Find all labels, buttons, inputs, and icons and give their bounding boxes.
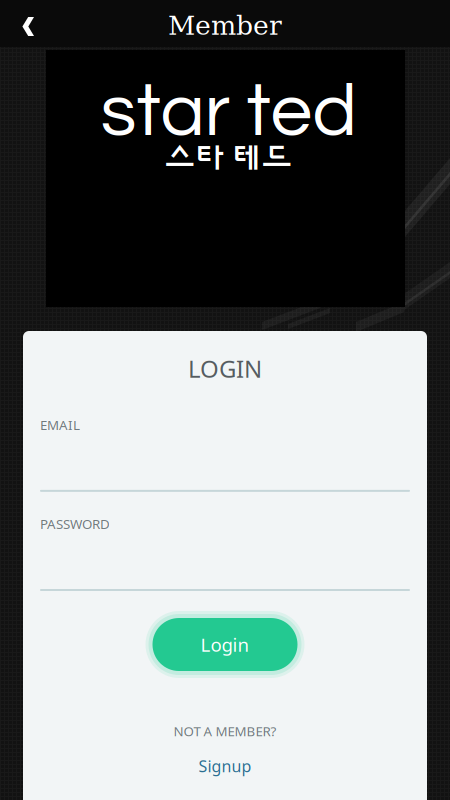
staticText: LOGIN bbox=[188, 352, 262, 385]
staticText: Member bbox=[168, 10, 282, 41]
staticText: star ted bbox=[100, 74, 356, 151]
button[interactable]: Login bbox=[145, 611, 304, 678]
staticText: NOT A MEMBER? bbox=[173, 722, 276, 740]
staticText: PASSWORD bbox=[40, 515, 110, 533]
staticText: 스타 테드 bbox=[165, 145, 292, 178]
button[interactable]: Signup bbox=[198, 740, 251, 777]
staticText: Login bbox=[200, 632, 249, 657]
staticText: Signup bbox=[198, 755, 251, 777]
staticText: EMAIL bbox=[40, 416, 80, 434]
button[interactable]: Back bbox=[0, 0, 48, 47]
